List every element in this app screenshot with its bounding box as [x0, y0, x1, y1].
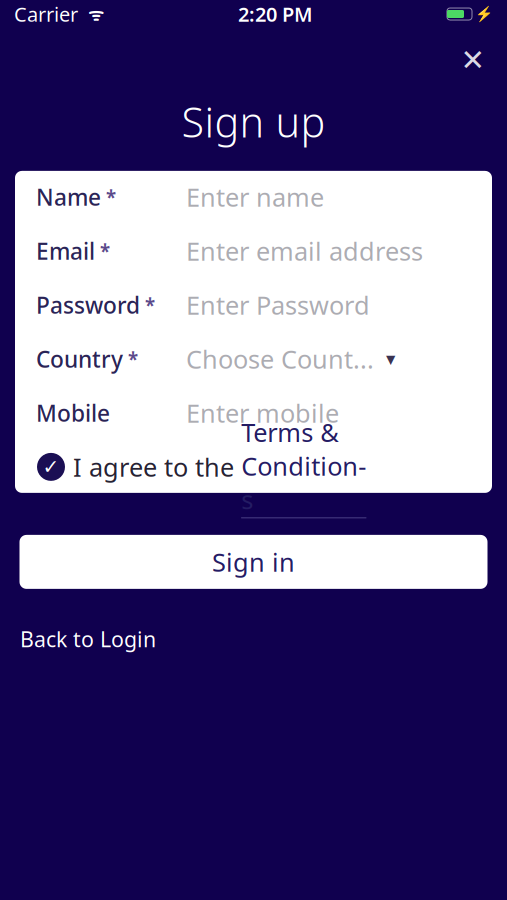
button[interactable]: Email [15, 224, 492, 278]
staticText: ᯤ [78, 2, 104, 25]
staticText: Name [36, 182, 101, 212]
button[interactable]: Terms & Conditions [241, 415, 366, 518]
button[interactable]: Sign in [19, 535, 487, 589]
staticText: * [128, 346, 138, 371]
staticText: Sign up [181, 94, 325, 149]
staticText: Carrier [14, 1, 78, 27]
staticText: Email [36, 236, 95, 266]
button[interactable]: Name [15, 170, 492, 224]
staticText: ▾ [374, 348, 395, 369]
button[interactable]: Back to Login [20, 625, 156, 653]
staticText: * [100, 238, 110, 263]
button[interactable]: Close [451, 38, 495, 82]
staticText: ✕ [460, 43, 485, 77]
staticText: * [106, 184, 116, 209]
staticText: Enter name [186, 180, 324, 214]
staticText: Mobile [36, 398, 110, 428]
staticText: Terms & Conditions [241, 415, 366, 516]
staticText: 2:20 PM [238, 1, 313, 27]
staticText: Enter Password [186, 288, 370, 322]
staticText: * [145, 292, 155, 317]
button[interactable]: Agree to terms [29, 445, 73, 489]
staticText: I agree to the [73, 450, 241, 484]
staticText: Enter email address [186, 234, 423, 268]
staticText: Password [36, 290, 140, 320]
staticText: Enter mobile [186, 396, 339, 430]
button[interactable]: Country [15, 332, 492, 386]
staticText: ✓ [42, 455, 59, 478]
button[interactable]: Password [15, 278, 492, 332]
staticText: Choose Count... [186, 342, 374, 376]
staticText: Back to Login [20, 625, 156, 653]
staticText: Country [36, 344, 123, 374]
staticText: Sign in [212, 545, 295, 579]
button[interactable]: Mobile [15, 386, 492, 440]
staticText: ⚡ [475, 6, 493, 22]
